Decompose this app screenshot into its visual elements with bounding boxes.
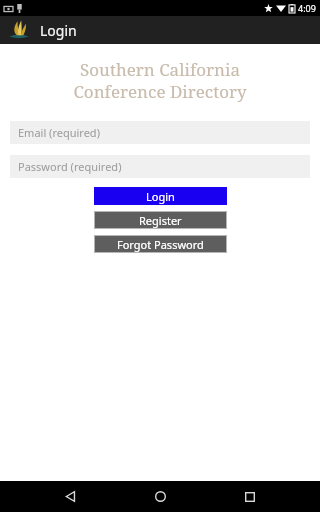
staticText: Login [146,189,175,204]
staticText: Forgot Password [117,237,204,252]
staticText: Email (required) [18,125,100,140]
button[interactable]: Back [50,481,90,512]
button[interactable]: Login [94,187,227,205]
staticText: 4:09 [298,2,316,14]
staticText: Login [40,21,77,40]
staticText: Southern California Conference Directory [0,58,320,103]
button[interactable]: Home [140,481,180,512]
button[interactable]: Register [95,212,226,228]
button[interactable]: Recent apps [230,481,270,512]
staticText: Password (required) [18,159,122,174]
button[interactable]: Password (required) [10,155,310,178]
button[interactable]: Forgot Password [95,236,226,252]
staticText: Register [139,213,182,228]
button[interactable]: Email (required) [10,121,310,144]
